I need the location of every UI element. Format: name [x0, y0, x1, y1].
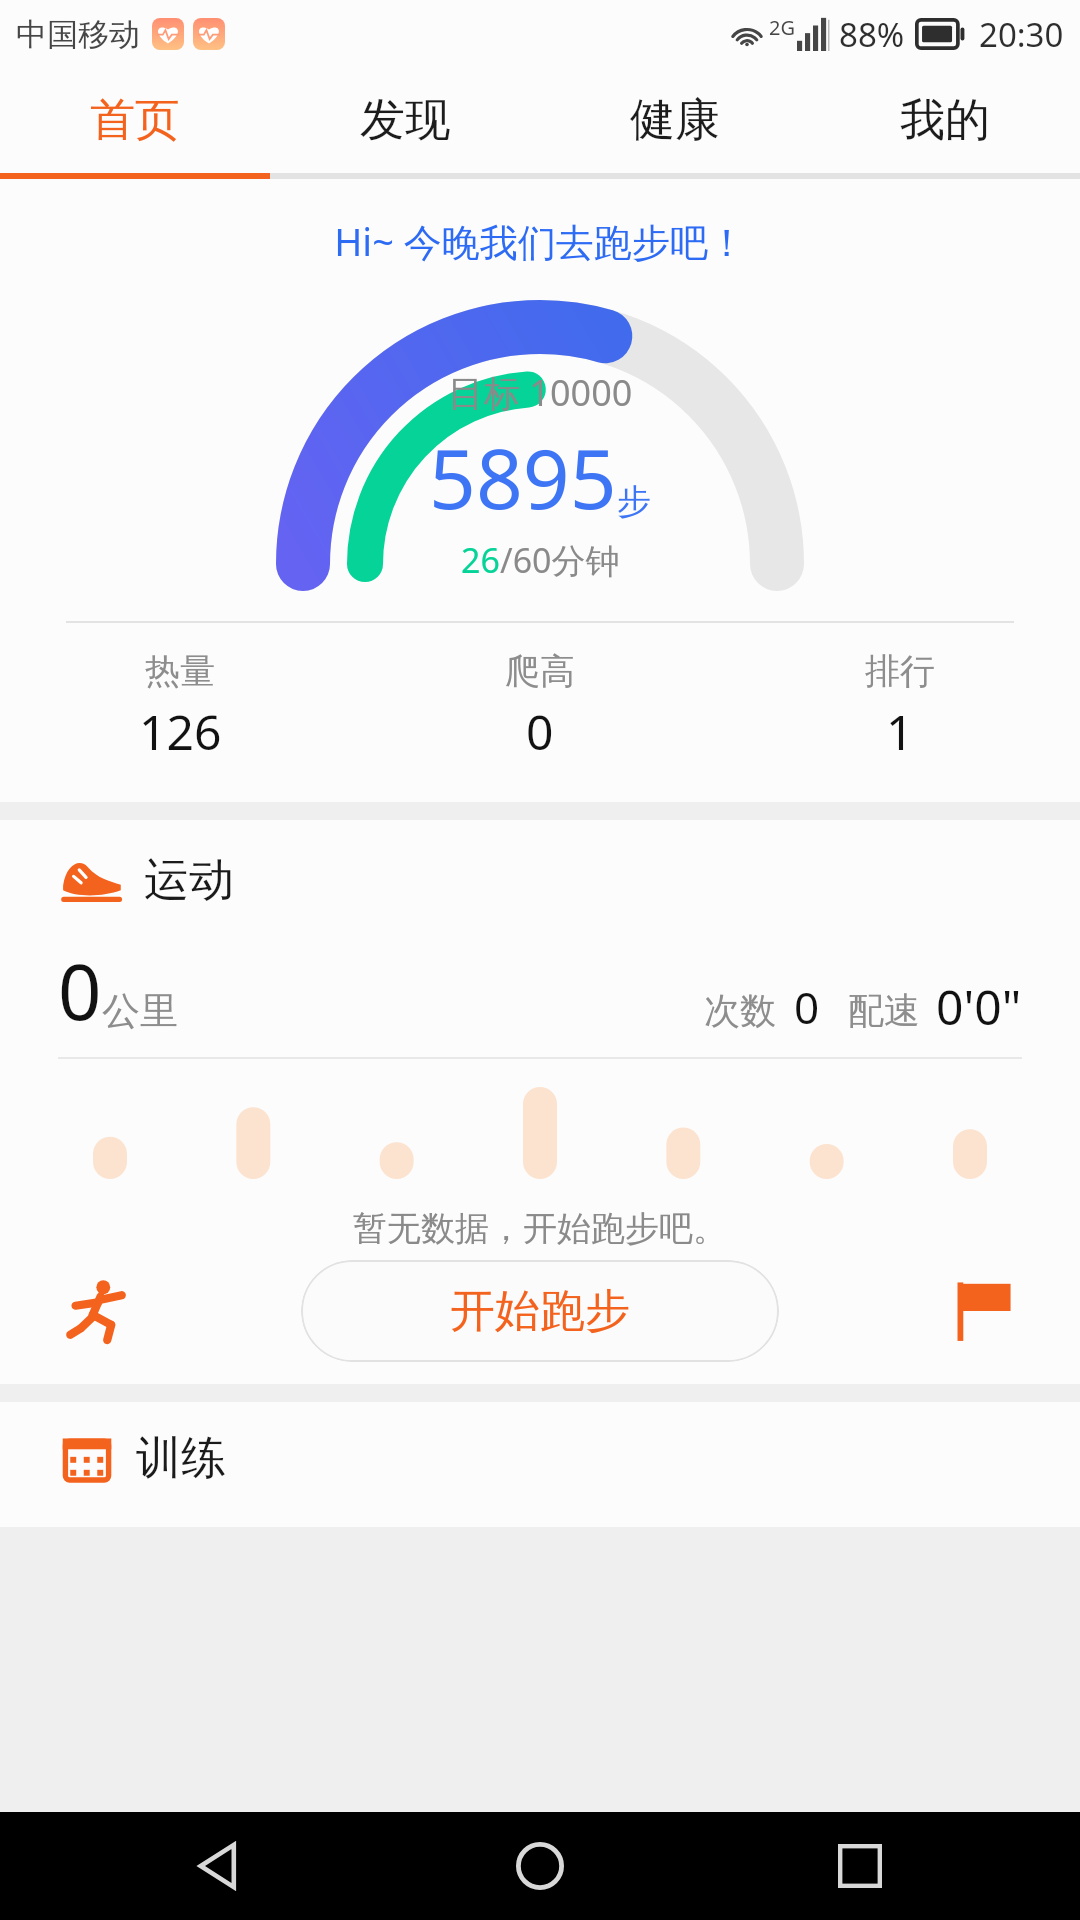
- button[interactable]: 训练: [0, 1402, 1080, 1527]
- staticText: 公里: [102, 987, 178, 1035]
- staticText: Hi~ 今晚我们去跑步吧！: [0, 215, 1080, 267]
- staticText: 2G: [769, 14, 795, 41]
- button[interactable]: Home: [492, 1818, 588, 1914]
- staticText: 步: [617, 480, 651, 523]
- staticText: 训练: [136, 1430, 226, 1487]
- staticText: 开始跑步: [450, 1283, 630, 1340]
- staticText: 5895: [429, 421, 617, 533]
- button[interactable]: 爬高: [360, 649, 720, 764]
- button[interactable]: Recent apps: [812, 1818, 908, 1914]
- staticText: 配速: [848, 988, 920, 1033]
- button[interactable]: Set goal: [934, 1263, 1030, 1359]
- button[interactable]: 我的: [810, 68, 1080, 173]
- staticText: 0'0": [936, 974, 1022, 1039]
- staticText: 1: [886, 699, 914, 764]
- staticText: 126: [139, 699, 222, 764]
- staticText: 0: [794, 977, 820, 1037]
- staticText: 88%: [839, 12, 905, 57]
- staticText: 20:30: [979, 12, 1064, 57]
- button[interactable]: 发现: [270, 68, 540, 173]
- staticText: 0: [58, 939, 102, 1043]
- button[interactable]: 首页: [0, 68, 270, 173]
- staticText: 26: [461, 537, 500, 583]
- button[interactable]: 健康: [540, 68, 810, 173]
- staticText: 目标 10000: [448, 368, 633, 417]
- button[interactable]: Run tracking: [50, 1263, 146, 1359]
- staticText: 运动: [144, 852, 234, 909]
- staticText: 我的: [900, 92, 990, 149]
- staticText: 0: [526, 699, 554, 764]
- staticText: 健康: [630, 92, 720, 149]
- staticText: 暂无数据，开始跑步吧。: [353, 1207, 727, 1250]
- button[interactable]: 开始跑步: [301, 1260, 779, 1362]
- staticText: 中国移动: [16, 15, 140, 54]
- staticText: 次数: [704, 988, 776, 1033]
- staticText: 首页: [90, 92, 180, 149]
- staticText: 爬高: [505, 649, 575, 693]
- staticText: 发现: [360, 92, 450, 149]
- staticText: /60分钟: [500, 537, 620, 583]
- staticText: 排行: [865, 649, 935, 693]
- button[interactable]: 排行: [720, 649, 1080, 764]
- button[interactable]: 热量: [0, 649, 360, 764]
- button[interactable]: Back: [172, 1818, 268, 1914]
- staticText: 热量: [145, 649, 215, 693]
- button[interactable]: 运动: [0, 820, 1080, 917]
